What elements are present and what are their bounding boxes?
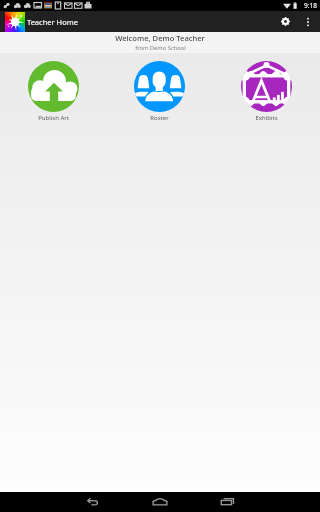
button[interactable]: Settings — [272, 11, 298, 32]
button[interactable]: Roster — [106, 61, 213, 122]
staticText: Publish Art — [38, 114, 69, 122]
staticText: Welcome, Demo Teacher — [115, 33, 205, 43]
button[interactable]: More options — [298, 11, 318, 32]
staticText: Teacher Home — [27, 17, 78, 27]
button[interactable]: Back — [60, 492, 124, 512]
button[interactable]: Exhibits — [213, 61, 320, 122]
staticText: 9:18 — [304, 1, 317, 10]
button[interactable]: Publish Art — [0, 61, 106, 122]
button[interactable]: Recent apps — [196, 492, 260, 512]
staticText: Roster — [150, 114, 169, 122]
button[interactable]: Home — [128, 492, 192, 512]
staticText: Exhibits — [255, 114, 278, 122]
staticText: from Demo School — [135, 44, 186, 52]
